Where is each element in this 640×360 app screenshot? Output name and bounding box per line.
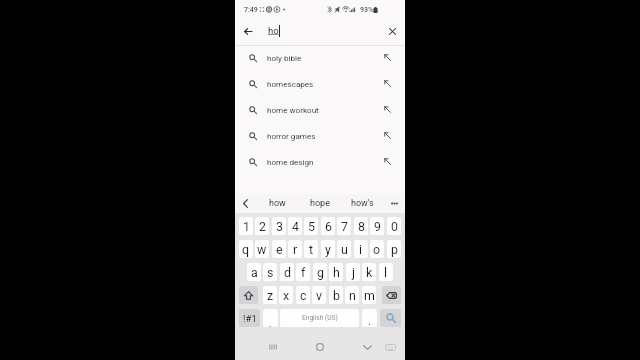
staticText: o xyxy=(373,242,381,257)
button[interactable]: q xyxy=(239,240,253,258)
button[interactable]: English (US) xyxy=(280,309,359,327)
staticText: homescapes xyxy=(267,79,314,88)
staticText: 0 xyxy=(391,219,398,234)
button[interactable]: 6 xyxy=(321,217,335,235)
button[interactable]: y xyxy=(321,240,335,258)
staticText: 3 xyxy=(276,219,283,234)
staticText: g xyxy=(317,265,324,280)
staticText: how's xyxy=(351,198,374,209)
button[interactable]: Shift xyxy=(239,286,258,304)
button[interactable]: f xyxy=(296,263,310,281)
staticText: 5 xyxy=(308,219,315,234)
button[interactable]: 0 xyxy=(387,217,401,235)
button[interactable]: Back xyxy=(237,20,259,42)
button[interactable]: a xyxy=(247,263,261,281)
button[interactable]: Previous suggestions xyxy=(235,194,256,213)
button[interactable]: 1 xyxy=(239,217,253,235)
button[interactable]: Hide keyboard xyxy=(350,332,384,360)
staticText: 8 xyxy=(358,219,365,234)
button[interactable]: k xyxy=(362,263,376,281)
button[interactable]: u xyxy=(337,240,351,258)
button[interactable]: Search xyxy=(380,309,401,327)
button[interactable]: s xyxy=(263,263,277,281)
staticText: s xyxy=(267,265,274,280)
staticText: !#1 xyxy=(243,313,257,324)
button[interactable]: l xyxy=(379,263,393,281)
button[interactable]: d xyxy=(280,263,294,281)
button[interactable]: 2 xyxy=(255,217,269,235)
staticText: y xyxy=(325,242,331,257)
staticText: i xyxy=(359,242,363,257)
button[interactable]: v xyxy=(312,286,326,304)
button[interactable]: how xyxy=(256,194,298,213)
staticText: b xyxy=(333,288,340,303)
button[interactable]: c xyxy=(296,286,310,304)
button[interactable]: Recent apps xyxy=(256,332,290,360)
button[interactable]: 9 xyxy=(370,217,384,235)
staticText: 4 xyxy=(292,219,299,234)
button[interactable]: More suggestions xyxy=(384,194,405,213)
staticText: t xyxy=(309,242,314,257)
staticText: d xyxy=(284,265,291,280)
button[interactable]: g xyxy=(313,263,327,281)
staticText: home design xyxy=(267,157,314,166)
staticText: 1 xyxy=(243,219,250,234)
button[interactable]: horror games xyxy=(235,123,405,149)
button[interactable]: e xyxy=(272,240,286,258)
staticText: m xyxy=(364,288,375,303)
staticText: j xyxy=(352,265,355,280)
staticText: home workout xyxy=(267,105,319,114)
button[interactable]: 8 xyxy=(354,217,368,235)
staticText: l xyxy=(384,265,388,280)
staticText: w xyxy=(257,242,267,257)
button[interactable]: h xyxy=(329,263,343,281)
staticText: 6 xyxy=(325,219,332,234)
button[interactable]: p xyxy=(387,240,401,258)
button[interactable]: how's xyxy=(341,194,384,213)
button[interactable]: x xyxy=(279,286,293,304)
staticText: a xyxy=(251,265,258,280)
button[interactable]: t xyxy=(304,240,318,258)
button[interactable]: Backspace xyxy=(382,286,401,304)
button[interactable]: 4 xyxy=(288,217,302,235)
button[interactable]: home design xyxy=(235,149,405,175)
staticText: k xyxy=(366,265,373,280)
staticText: v xyxy=(316,288,323,303)
button[interactable]: hope xyxy=(298,194,341,213)
button[interactable]: Clear search xyxy=(381,20,403,42)
staticText: r xyxy=(293,242,298,257)
button[interactable]: Change keyboard xyxy=(377,332,403,360)
staticText: c xyxy=(300,288,307,303)
button[interactable]: w xyxy=(255,240,269,258)
staticText: n xyxy=(349,288,356,303)
staticText: 9 xyxy=(374,219,381,234)
button[interactable]: holy bible xyxy=(235,45,405,71)
staticText: 7 xyxy=(341,219,348,234)
button[interactable]: homescapes xyxy=(235,71,405,97)
staticText: , xyxy=(269,317,272,327)
button[interactable]: b xyxy=(329,286,343,304)
staticText: horror games xyxy=(267,131,316,140)
staticText: q xyxy=(242,242,250,257)
staticText: e xyxy=(276,242,283,257)
button[interactable]: m xyxy=(362,286,376,304)
button[interactable]: 3 xyxy=(272,217,286,235)
staticText: ho xyxy=(268,25,279,36)
staticText: z xyxy=(267,288,274,303)
button[interactable]: z xyxy=(263,286,277,304)
staticText: . xyxy=(368,315,371,327)
button[interactable]: j xyxy=(346,263,360,281)
staticText: how xyxy=(269,198,286,209)
button[interactable]: Home xyxy=(303,332,337,360)
button[interactable]: , xyxy=(263,309,278,327)
button[interactable]: o xyxy=(370,240,384,258)
button[interactable]: n xyxy=(345,286,359,304)
button[interactable]: i xyxy=(354,240,368,258)
button[interactable]: . xyxy=(362,309,377,327)
button[interactable]: 7 xyxy=(337,217,351,235)
button[interactable]: !#1 xyxy=(239,309,260,327)
button[interactable]: r xyxy=(288,240,302,258)
button[interactable]: 5 xyxy=(304,217,318,235)
button[interactable]: home workout xyxy=(235,97,405,123)
staticText: u xyxy=(341,242,348,257)
